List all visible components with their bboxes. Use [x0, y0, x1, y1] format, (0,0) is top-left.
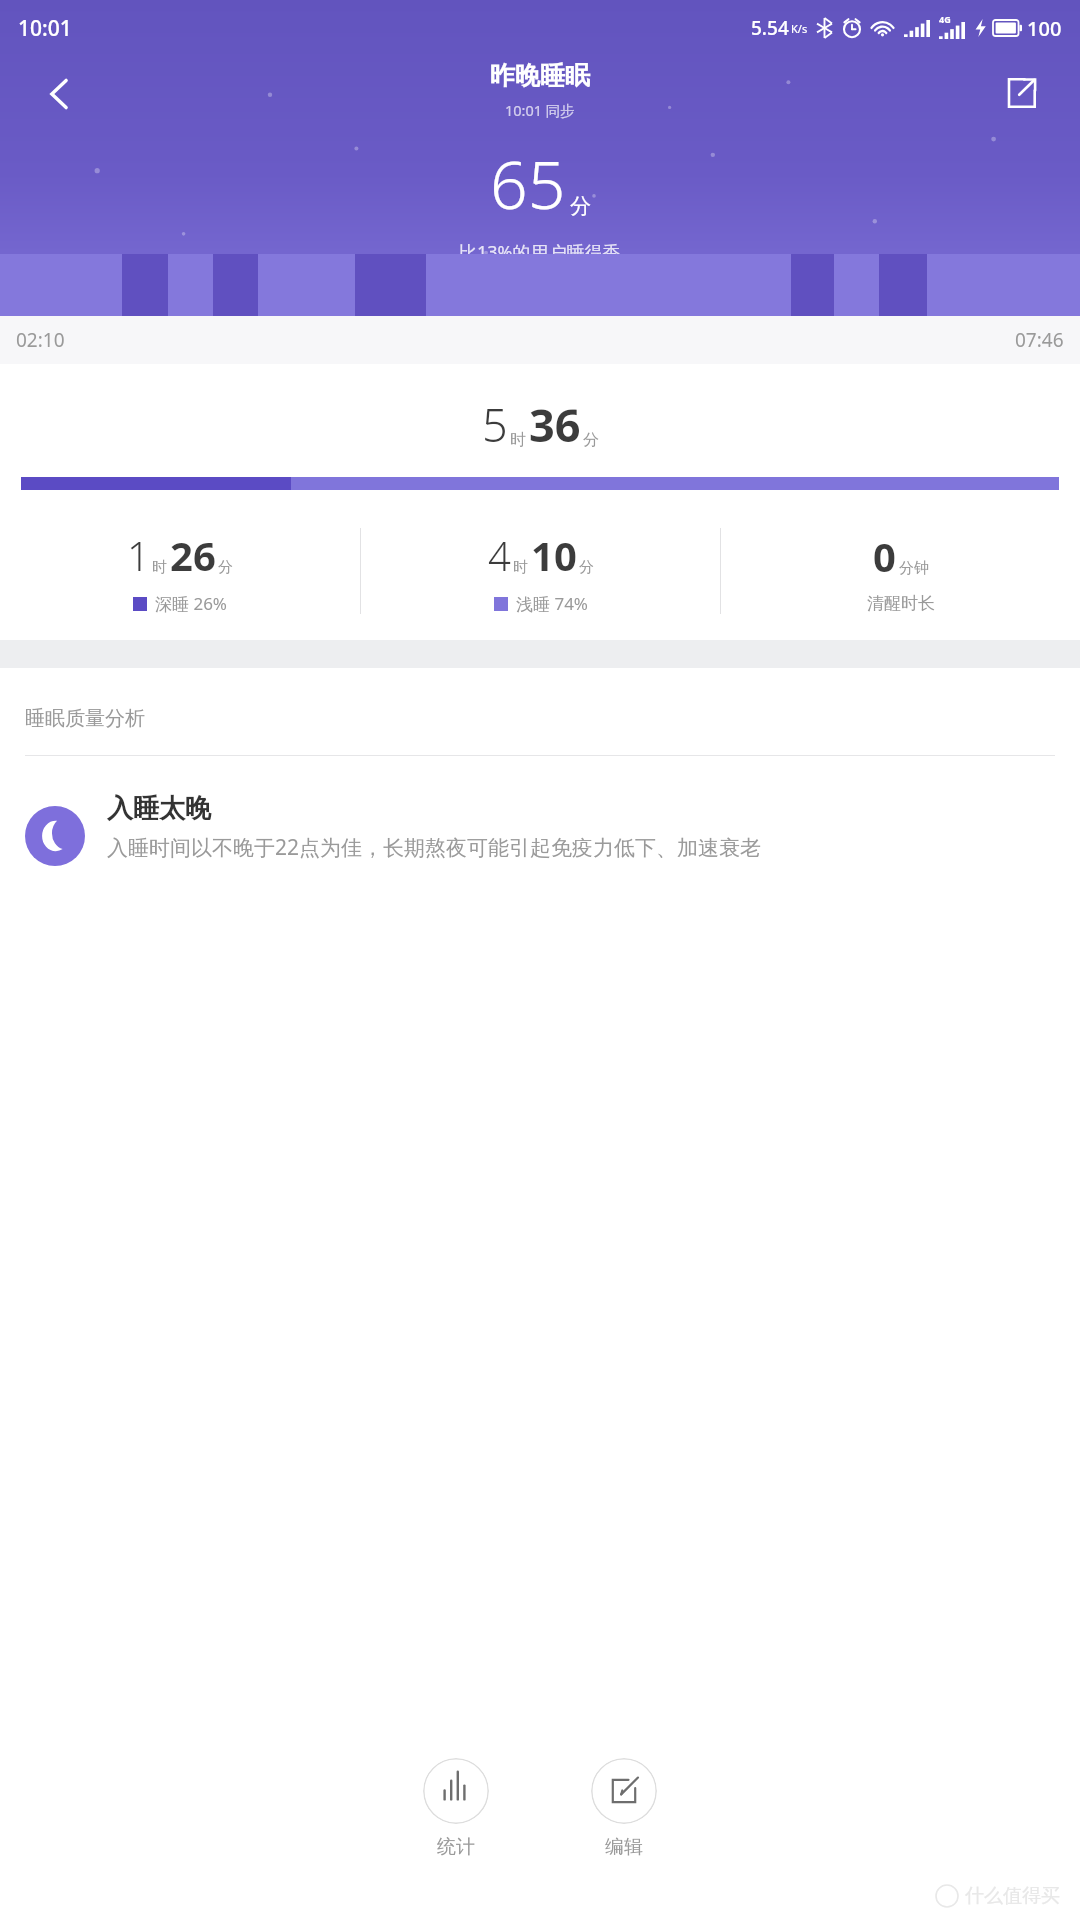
staticText: 分钟 — [899, 559, 929, 578]
staticText: 分 — [570, 193, 591, 219]
staticText: 5 — [482, 394, 508, 455]
staticText: 睡眠质量分析 — [25, 706, 145, 731]
staticText: 4 — [488, 528, 511, 582]
staticText: 什么值得买 — [965, 1884, 1060, 1908]
button[interactable]: 入睡太晚 — [0, 792, 1080, 876]
staticText: 07:46 — [1015, 327, 1064, 353]
staticText: 统计 — [437, 1835, 475, 1859]
button[interactable]: Back — [24, 58, 96, 130]
staticText: K/s — [791, 21, 808, 36]
staticText: 比13%的用户睡得香 — [459, 240, 621, 265]
staticText: 编辑 — [605, 1835, 643, 1859]
staticText: 02:10 — [16, 327, 65, 353]
button[interactable]: 统计 — [413, 1754, 499, 1863]
staticText: 昨晚睡眠 — [490, 60, 590, 91]
staticText: 10:01 — [18, 14, 72, 43]
staticText: 1 — [127, 528, 150, 582]
staticText: 深睡 26% — [155, 592, 227, 615]
staticText: 10:01 同步 — [505, 100, 575, 120]
staticText: 浅睡 74% — [516, 592, 588, 615]
staticText: 100 — [1027, 15, 1062, 42]
staticText: 4G — [939, 13, 951, 25]
staticText: 0 — [873, 529, 896, 583]
staticText: 分 — [583, 430, 599, 450]
staticText: 时 — [152, 558, 167, 577]
staticText: 65 — [490, 138, 566, 228]
staticText: 36 — [529, 394, 581, 455]
staticText: 分 — [579, 558, 594, 577]
staticText: 10 — [531, 528, 577, 582]
staticText: 清醒时长 — [867, 593, 935, 614]
staticText: 入睡太晚 — [107, 792, 211, 825]
staticText: 26 — [170, 528, 216, 582]
staticText: 入睡时间以不晚于22点为佳，长期熬夜可能引起免疫力低下、加速衰老 — [107, 833, 762, 862]
staticText: 时 — [510, 430, 526, 450]
button[interactable]: 编辑 — [581, 1754, 667, 1863]
button[interactable]: Share — [986, 58, 1056, 128]
staticText: 5.54 — [751, 15, 789, 41]
staticText: 分 — [218, 558, 233, 577]
staticText: 时 — [513, 558, 528, 577]
